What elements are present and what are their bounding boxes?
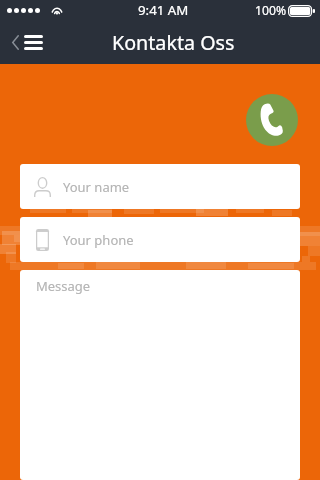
button[interactable]: Your name: [20, 164, 300, 209]
staticText: 100%: [255, 2, 287, 19]
button[interactable]: Call: [246, 94, 298, 146]
button[interactable]: Your phone: [20, 217, 300, 262]
staticText: Your name: [63, 178, 130, 196]
staticText: Your phone: [63, 231, 134, 249]
staticText: Kontakta Oss: [112, 29, 235, 56]
staticText: 9:41 AM: [138, 1, 189, 19]
staticText: Message: [36, 277, 91, 295]
button[interactable]: Menu: [12, 35, 43, 50]
button[interactable]: Message: [20, 270, 300, 480]
